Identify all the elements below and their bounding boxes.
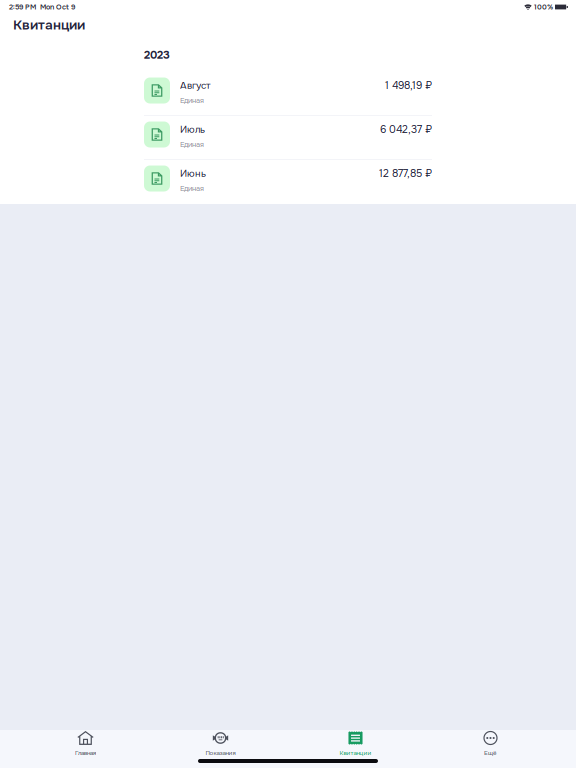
button[interactable]: Июнь (144, 160, 432, 203)
button[interactable]: Июль (144, 116, 432, 159)
staticText: 100% (532, 2, 555, 12)
staticText: Август (180, 79, 211, 92)
staticText: 2023 (144, 48, 170, 62)
staticText: Главная (75, 749, 96, 757)
staticText: Единая (180, 184, 204, 193)
button[interactable]: Показания (153, 730, 288, 757)
button[interactable]: Ещё (423, 730, 558, 757)
button[interactable]: Квитанции (288, 730, 423, 757)
staticText: Единая (180, 96, 204, 105)
staticText: 6 042,37 ₽ (380, 123, 432, 136)
staticText: Квитанции (13, 16, 85, 34)
staticText: 1 498,19 ₽ (385, 79, 432, 92)
button[interactable]: Главная (18, 730, 153, 757)
staticText: Mon Oct 9 (36, 2, 75, 12)
staticText: Ещё (484, 749, 497, 757)
staticText: Показания (205, 749, 235, 757)
staticText: Июль (180, 123, 205, 136)
staticText: Единая (180, 140, 204, 149)
staticText: Квитанции (339, 749, 371, 757)
staticText: 2:59 PM (9, 2, 36, 12)
button[interactable]: Август (144, 72, 432, 115)
staticText: 12 877,85 ₽ (379, 167, 432, 180)
staticText: Июнь (180, 167, 206, 180)
